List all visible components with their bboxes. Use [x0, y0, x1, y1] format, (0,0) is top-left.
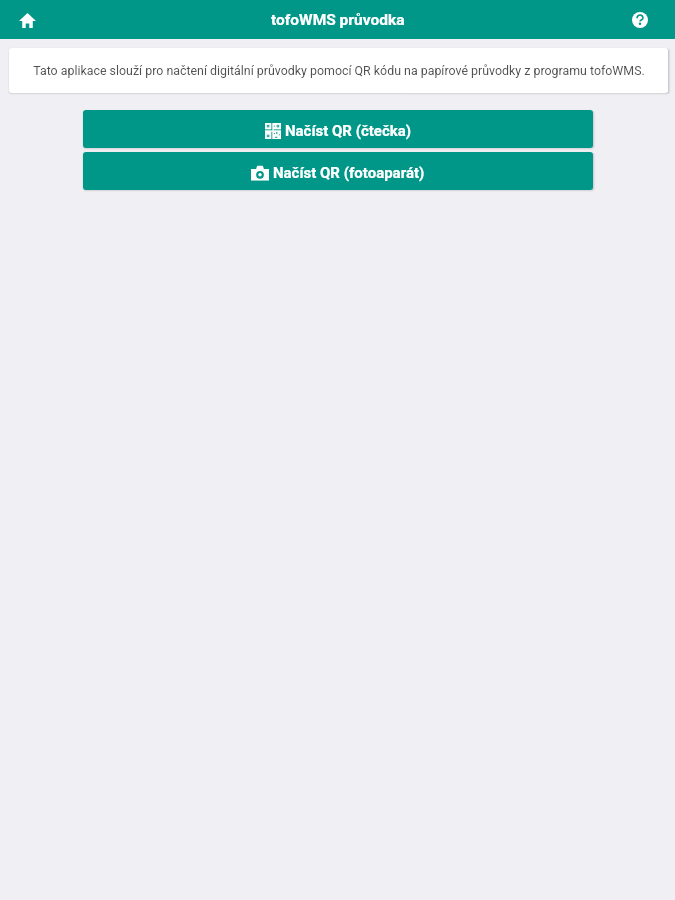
staticText: Načíst QR (čtečka) [285, 122, 412, 140]
button[interactable]: Home [9, 2, 45, 38]
staticText: tofoWMS průvodka [271, 11, 405, 29]
staticText: Načíst QR (fotoaparát) [273, 164, 425, 182]
button[interactable]: Načíst QR (fotoaparát) [83, 152, 593, 190]
staticText: Tato aplikace slouží pro načtení digitál… [33, 63, 645, 78]
button[interactable]: Načíst QR (čtečka) [83, 110, 593, 148]
button[interactable]: Help [622, 2, 658, 38]
